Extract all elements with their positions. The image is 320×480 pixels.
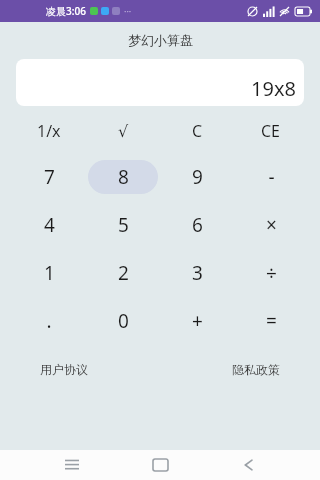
button[interactable]: Home (143, 450, 177, 480)
button[interactable]: 1 (12, 250, 86, 296)
staticText: 用户协议 (40, 362, 88, 377)
button[interactable]: 6 (160, 202, 234, 248)
staticText: 5 (118, 212, 129, 238)
staticText: 凌晨3:06 (46, 4, 86, 18)
button[interactable]: Back (232, 450, 266, 480)
staticText: 1/x (37, 120, 61, 142)
staticText: 1 (44, 260, 55, 286)
button[interactable]: 3 (160, 250, 234, 296)
button[interactable]: 2 (86, 250, 160, 296)
staticText: C (192, 120, 203, 142)
staticText: 8 (118, 164, 129, 190)
button[interactable]: 用户协议 (40, 362, 88, 377)
staticText: 2 (118, 260, 129, 286)
staticText: 19x8 (251, 75, 296, 102)
staticText: = (266, 308, 277, 334)
staticText: 7 (44, 164, 55, 190)
button[interactable]: 8 (86, 154, 160, 200)
button[interactable]: 5 (86, 202, 160, 248)
staticText: CE (261, 120, 281, 142)
staticText: - (268, 164, 275, 190)
button[interactable]: 9 (160, 154, 234, 200)
staticText: 4 (44, 212, 55, 238)
staticText: 6 (192, 212, 203, 238)
button[interactable]: . (12, 298, 86, 344)
staticText: 9 (192, 164, 203, 190)
button[interactable]: C (160, 117, 234, 145)
button[interactable]: 7 (12, 154, 86, 200)
staticText: × (266, 212, 277, 238)
button[interactable]: 4 (12, 202, 86, 248)
staticText: 隐私政策 (232, 362, 280, 377)
staticText: 0 (118, 308, 129, 334)
button[interactable]: 0 (86, 298, 160, 344)
staticText: ÷ (266, 260, 277, 286)
staticText: 梦幻小算盘 (128, 32, 193, 48)
button[interactable]: - (234, 154, 308, 200)
button[interactable]: = (234, 298, 308, 344)
staticText: √ (118, 122, 129, 141)
staticText: . (46, 308, 52, 334)
staticText: ··· (124, 5, 132, 17)
button[interactable]: √ (86, 117, 160, 145)
staticText: + (192, 308, 203, 334)
button[interactable]: 19x8 (16, 59, 304, 106)
button[interactable]: Recent apps (55, 450, 89, 480)
button[interactable]: ÷ (234, 250, 308, 296)
button[interactable]: 1/x (12, 117, 86, 145)
button[interactable]: + (160, 298, 234, 344)
button[interactable]: CE (234, 117, 308, 145)
button[interactable]: 隐私政策 (232, 362, 280, 377)
staticText: 3 (192, 260, 203, 286)
button[interactable]: × (234, 202, 308, 248)
